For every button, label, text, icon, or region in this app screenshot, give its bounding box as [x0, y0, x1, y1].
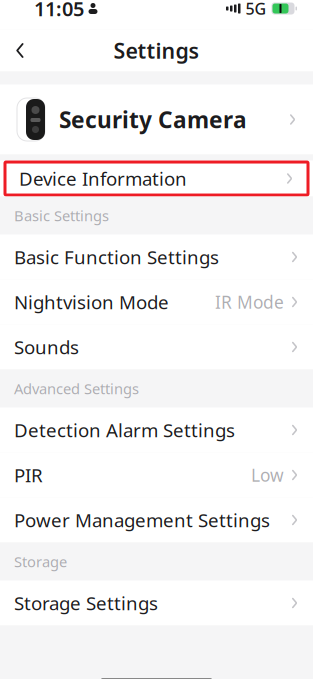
button[interactable]: PIR — [0, 452, 313, 497]
staticText: Power Management Settings — [14, 508, 270, 532]
staticText: Settings — [113, 36, 199, 65]
staticText: Advanced Settings — [14, 379, 139, 398]
staticText: PIR — [14, 463, 43, 487]
button[interactable]: Device Information — [0, 162, 313, 195]
staticText: Security Camera — [59, 104, 247, 134]
staticText: Basic Function Settings — [14, 245, 219, 269]
button[interactable]: Security Camera — [0, 84, 313, 154]
staticText: Device Information — [19, 166, 187, 191]
button[interactable]: Sounds — [0, 324, 313, 369]
staticText: Storage — [14, 552, 67, 571]
staticText: Low — [251, 463, 284, 486]
staticText: Basic Settings — [14, 206, 109, 225]
button[interactable]: Power Management Settings — [0, 497, 313, 542]
button[interactable]: Basic Function Settings — [0, 234, 313, 279]
staticText: Sounds — [14, 335, 79, 359]
button[interactable]: Back — [0, 30, 40, 70]
button[interactable]: Storage Settings — [0, 580, 313, 625]
staticText: Storage Settings — [14, 591, 158, 615]
staticText: 11:05 — [34, 0, 84, 22]
button[interactable]: Detection Alarm Settings — [0, 407, 313, 452]
staticText: IR Mode — [215, 290, 284, 313]
button[interactable]: Nightvision Mode — [0, 279, 313, 324]
staticText: Nightvision Mode — [14, 290, 169, 314]
staticText: Detection Alarm Settings — [14, 418, 235, 442]
staticText: 5G — [245, 0, 266, 19]
